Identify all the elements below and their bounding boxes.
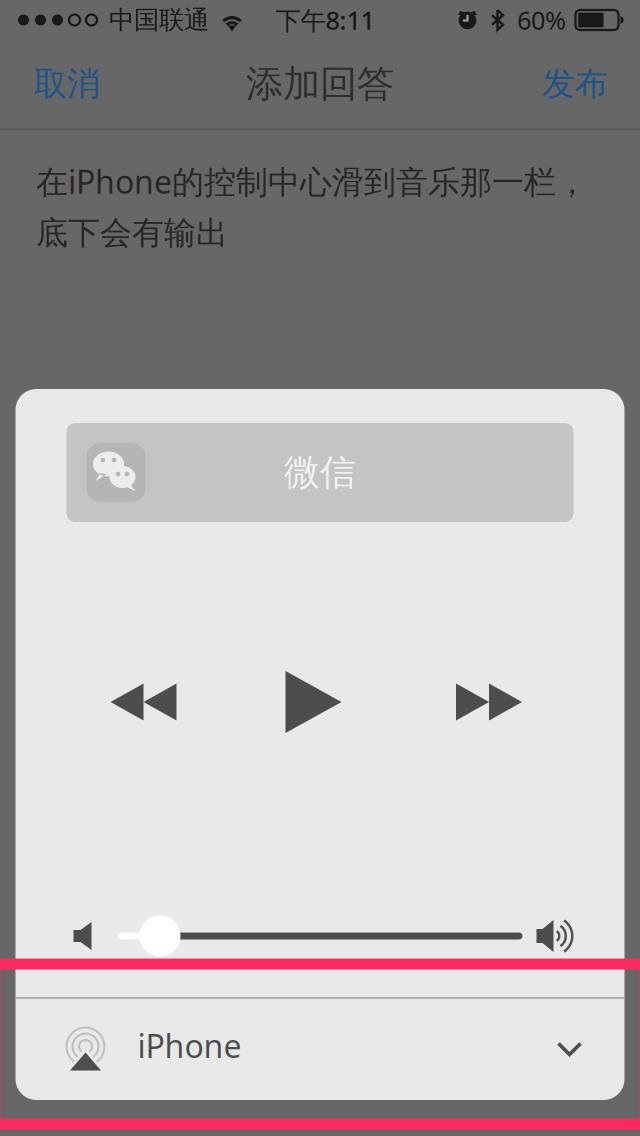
button[interactable]: 发布 — [522, 49, 640, 118]
button[interactable]: 取消 — [0, 49, 120, 118]
staticText: 发布 — [542, 63, 608, 104]
button[interactable]: Next track — [402, 661, 575, 742]
staticText: 在iPhone的控制中心滑到音乐那一栏，底下会有输出 — [36, 160, 588, 253]
button[interactable]: iPhone — [15, 999, 624, 1100]
staticText: 取消 — [34, 63, 100, 104]
staticText: 微信 — [284, 450, 356, 495]
staticText: 60% — [517, 3, 566, 37]
button[interactable]: Previous track — [62, 661, 224, 742]
staticText: 添加回答 — [246, 61, 394, 107]
button[interactable]: Play — [224, 661, 402, 743]
staticText: 下午8:11 — [275, 3, 374, 37]
button[interactable]: 微信 — [66, 423, 573, 522]
staticText: iPhone — [137, 1024, 241, 1067]
staticText: 中国联通 — [109, 4, 209, 35]
